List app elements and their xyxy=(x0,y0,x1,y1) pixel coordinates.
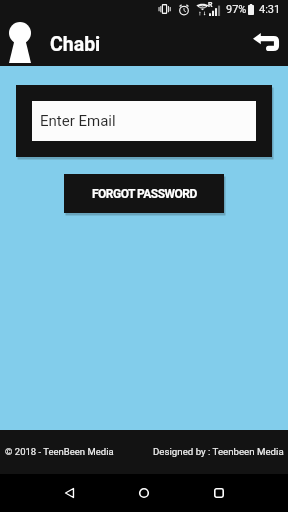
staticText: Chabi xyxy=(50,33,101,56)
button[interactable]: Back xyxy=(53,477,85,509)
staticText: 97% xyxy=(226,3,247,16)
staticText: R xyxy=(208,1,213,9)
staticText: Designed by : Teenbeen Media xyxy=(153,446,284,457)
staticText: © 2018 - TeenBeen Media xyxy=(5,446,114,457)
staticText: 4:31 xyxy=(259,3,281,16)
button[interactable]: Back xyxy=(244,20,288,64)
staticText: FORGOT PASSWORD xyxy=(92,187,197,201)
button[interactable]: Enter Email xyxy=(32,101,256,141)
button[interactable]: Recent apps xyxy=(203,477,235,509)
button[interactable]: Home xyxy=(128,477,160,509)
staticText: Enter Email xyxy=(40,112,116,130)
button[interactable]: FORGOT PASSWORD xyxy=(64,174,224,213)
